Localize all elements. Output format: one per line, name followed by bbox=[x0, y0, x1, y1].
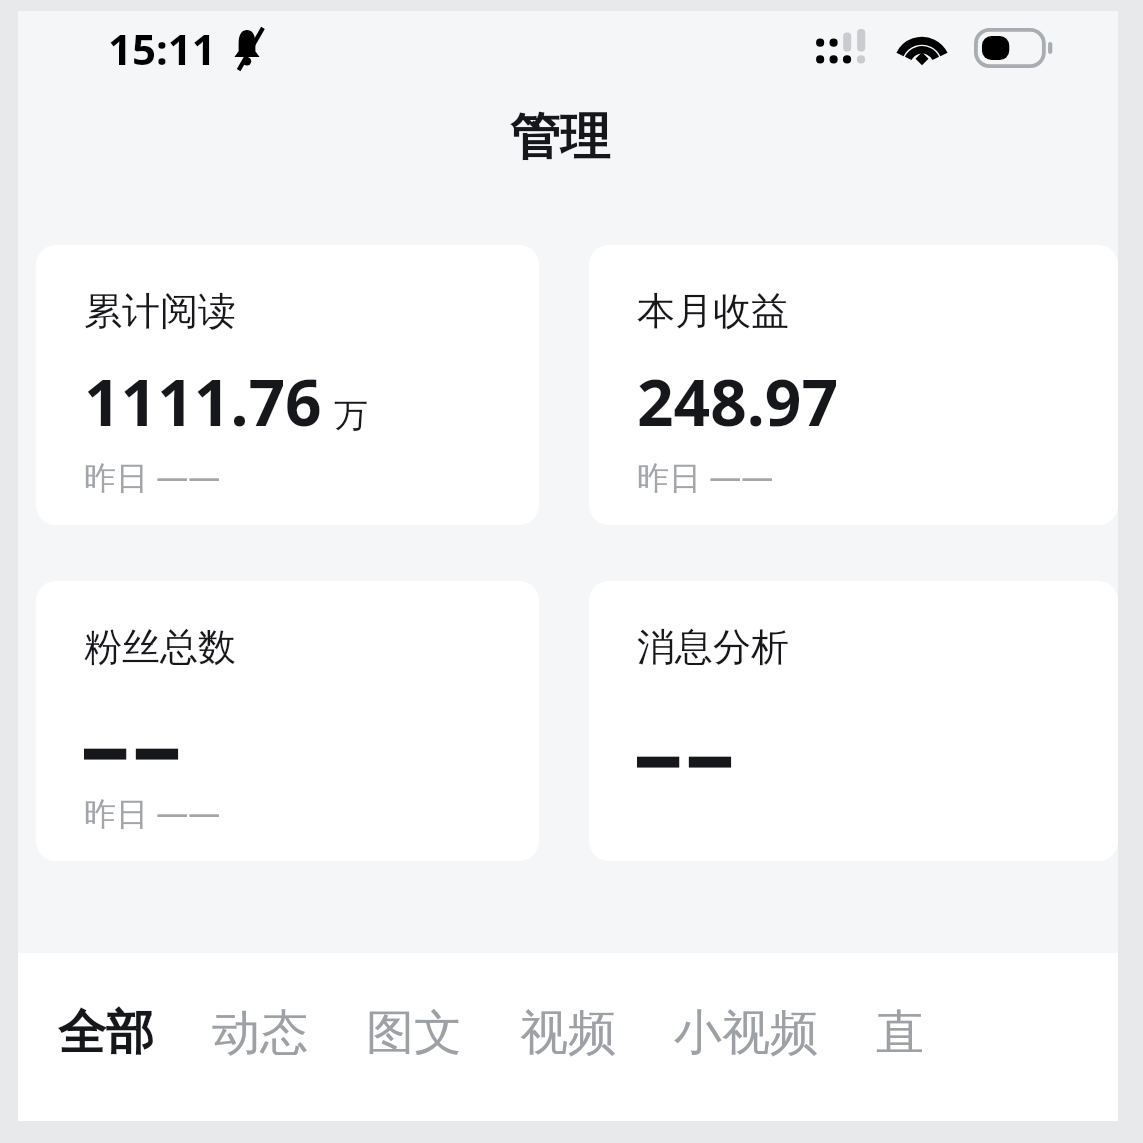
button[interactable]: 视频 bbox=[520, 995, 616, 1071]
button[interactable]: 本月收益 bbox=[589, 245, 1118, 525]
staticText: 粉丝总数 bbox=[84, 623, 236, 671]
button[interactable]: 全部 bbox=[58, 995, 154, 1071]
button[interactable]: 直 bbox=[876, 995, 924, 1071]
staticText: 1111.76 bbox=[84, 358, 322, 445]
staticText: 昨日 —— bbox=[84, 455, 221, 499]
staticText: 昨日 —— bbox=[637, 455, 774, 499]
button[interactable]: 图文 bbox=[366, 995, 462, 1071]
staticText: 消息分析 bbox=[637, 623, 789, 671]
button[interactable]: 累计阅读 bbox=[36, 245, 539, 525]
staticText: 小视频 bbox=[674, 1003, 818, 1063]
other: Signal bbox=[814, 29, 870, 67]
staticText: 248.97 bbox=[637, 358, 839, 445]
staticText: 视频 bbox=[520, 1003, 616, 1063]
staticText: 万 bbox=[334, 394, 368, 437]
staticText: 累计阅读 bbox=[84, 287, 236, 335]
button[interactable]: 消息分析 bbox=[589, 581, 1118, 861]
other: Silent mode bbox=[228, 27, 266, 71]
staticText: 本月收益 bbox=[637, 287, 789, 335]
button[interactable]: 粉丝总数 bbox=[36, 581, 539, 861]
staticText: 昨日 —— bbox=[84, 791, 221, 835]
other: Wi-Fi bbox=[896, 28, 948, 68]
staticText: 图文 bbox=[366, 1003, 462, 1063]
staticText: 直 bbox=[876, 1003, 924, 1063]
staticText: 管理 bbox=[510, 106, 610, 169]
other: Battery bbox=[974, 28, 1052, 68]
staticText: 全部 bbox=[58, 1003, 154, 1063]
button[interactable]: 小视频 bbox=[674, 995, 818, 1071]
button[interactable]: 动态 bbox=[212, 995, 308, 1071]
staticText: 15:11 bbox=[108, 20, 216, 77]
staticText: 动态 bbox=[212, 1003, 308, 1063]
